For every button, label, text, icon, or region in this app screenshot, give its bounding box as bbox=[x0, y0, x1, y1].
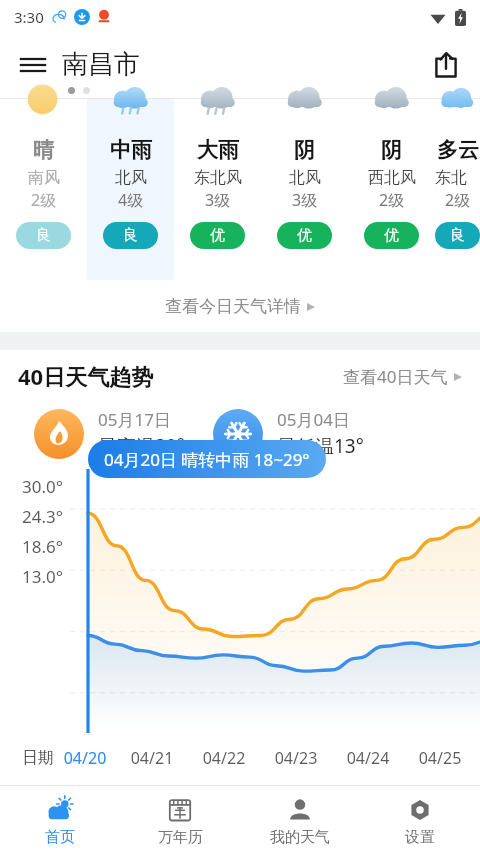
staticText: 05月04日 bbox=[277, 408, 350, 431]
button[interactable]: 04月20日 晴转中雨 18~29° bbox=[88, 440, 326, 478]
staticText: 04/20 bbox=[54, 747, 116, 769]
staticText: 北风 bbox=[115, 168, 147, 188]
staticText: 阴 bbox=[381, 137, 402, 163]
button[interactable]: 中雨 bbox=[87, 99, 174, 280]
staticText: 04/21 bbox=[116, 747, 188, 769]
staticText: 3级 bbox=[205, 189, 231, 211]
staticText: 优 bbox=[297, 226, 312, 245]
staticText: 04月20日 晴转中雨 18~29° bbox=[104, 448, 310, 471]
staticText: 2级 bbox=[379, 189, 405, 211]
staticText: 东北风 bbox=[194, 168, 242, 188]
staticText: 04/24 bbox=[332, 747, 404, 769]
staticText: 04/23 bbox=[260, 747, 332, 769]
button[interactable]: 阴 bbox=[348, 99, 435, 280]
staticText: 日期 bbox=[22, 748, 54, 768]
staticText: 04/25 bbox=[404, 747, 476, 769]
button[interactable]: 查看40日天气 bbox=[339, 361, 466, 392]
staticText: 大雨 bbox=[197, 137, 239, 163]
staticText: 04/22 bbox=[188, 747, 260, 769]
staticText: 4级 bbox=[118, 189, 144, 211]
staticText: 24.3° bbox=[22, 505, 64, 528]
staticText: 3级 bbox=[292, 189, 318, 211]
button[interactable]: 万年历 bbox=[120, 786, 240, 855]
button[interactable]: Menu bbox=[14, 44, 144, 85]
staticText: 北风 bbox=[289, 168, 321, 188]
button[interactable]: 我的天气 bbox=[240, 786, 360, 855]
staticText: 良 bbox=[450, 226, 465, 245]
staticText: 40日天气趋势 bbox=[18, 361, 154, 391]
staticText: 05月17日 bbox=[98, 408, 171, 431]
staticText: 最低温13° bbox=[277, 433, 364, 459]
staticText: 多云 bbox=[437, 137, 479, 163]
staticText: 最高温30° bbox=[98, 433, 185, 459]
other: Menu bbox=[18, 50, 48, 80]
staticText: 13.0° bbox=[22, 565, 64, 588]
staticText: 晴 bbox=[33, 137, 54, 163]
staticText: 30.0° bbox=[22, 475, 64, 498]
staticText: 2级 bbox=[445, 189, 471, 211]
staticText: 南风 bbox=[28, 168, 60, 188]
staticText: 我的天气 bbox=[270, 828, 330, 847]
button[interactable]: 晴 bbox=[0, 99, 87, 280]
staticText: 首页 bbox=[45, 828, 75, 847]
button[interactable]: 首页 bbox=[0, 786, 120, 855]
staticText: 优 bbox=[384, 226, 399, 245]
staticText: 东北风 bbox=[435, 168, 480, 188]
staticText: 西北风 bbox=[368, 168, 416, 188]
button[interactable]: Share bbox=[430, 49, 462, 81]
staticText: 查看40日天气 bbox=[343, 365, 448, 388]
button[interactable]: 多云 bbox=[435, 99, 480, 280]
staticText: 良 bbox=[36, 226, 51, 245]
button[interactable]: 设置 bbox=[360, 786, 480, 855]
staticText: 南昌市 bbox=[62, 48, 140, 81]
button[interactable]: 阴 bbox=[261, 99, 348, 280]
button[interactable]: 大雨 bbox=[174, 99, 261, 280]
staticText: 3:30 bbox=[14, 7, 44, 27]
staticText: 良 bbox=[123, 226, 138, 245]
staticText: 阴 bbox=[294, 137, 315, 163]
button[interactable]: 查看今日天气详情 bbox=[0, 280, 480, 332]
staticText: 中雨 bbox=[110, 137, 152, 163]
staticText: 18.6° bbox=[22, 535, 64, 558]
staticText: 优 bbox=[210, 226, 225, 245]
staticText: 2级 bbox=[31, 189, 57, 211]
staticText: 万年历 bbox=[158, 828, 203, 847]
staticText: 设置 bbox=[405, 828, 435, 847]
staticText: 查看今日天气详情 bbox=[165, 296, 301, 317]
